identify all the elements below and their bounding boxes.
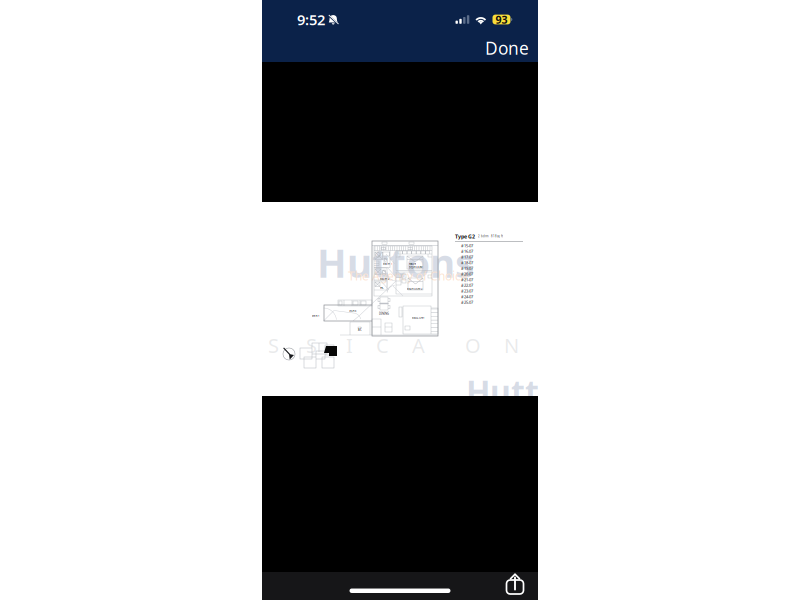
staticText: I — [346, 332, 353, 359]
button[interactable]: Share — [504, 572, 526, 595]
staticText: S — [268, 332, 279, 359]
staticText: BATH 2 — [380, 277, 390, 280]
staticText: #25-07 — [461, 300, 473, 305]
staticText: Type G2 — [455, 233, 475, 240]
staticText: BATH 1 — [383, 262, 393, 265]
staticText: #15-07 — [461, 243, 473, 248]
staticText: 2 bdrm 818sq ft — [478, 234, 503, 238]
staticText: #22-07 — [461, 283, 473, 288]
staticText: #23-07 — [461, 288, 473, 294]
staticText: Huttons — [317, 237, 474, 288]
staticText: MAIN BEDROOM — [409, 262, 422, 269]
staticText: 9:52 — [297, 10, 325, 29]
staticText: #18-07 — [461, 260, 473, 265]
staticText: AC — [358, 328, 362, 331]
staticText: Done — [485, 36, 529, 59]
staticText: 93 — [495, 12, 507, 27]
staticText: STORE — [349, 309, 356, 312]
staticText: BEDROOM 2 — [407, 287, 423, 290]
staticText: Hutt — [466, 370, 539, 412]
staticText: ENTRY — [312, 314, 320, 317]
staticText: S — [306, 332, 317, 359]
staticText: #21-07 — [461, 277, 473, 282]
staticText: #24-07 — [461, 294, 473, 299]
staticText: The Agency of Choice — [348, 268, 468, 284]
staticText: A — [412, 332, 425, 359]
staticText: BALCONY — [412, 316, 425, 319]
staticText: WC — [380, 286, 384, 289]
staticText: C — [376, 332, 389, 359]
staticText: O — [465, 332, 481, 359]
staticText: #17-07 — [461, 254, 473, 260]
button[interactable]: Done — [477, 31, 537, 64]
staticText: #20-07 — [461, 271, 473, 277]
staticText: DINING — [379, 312, 389, 315]
staticText: #16-07 — [461, 249, 473, 254]
staticText: N — [504, 332, 519, 359]
staticText: #19-07 — [461, 266, 473, 271]
